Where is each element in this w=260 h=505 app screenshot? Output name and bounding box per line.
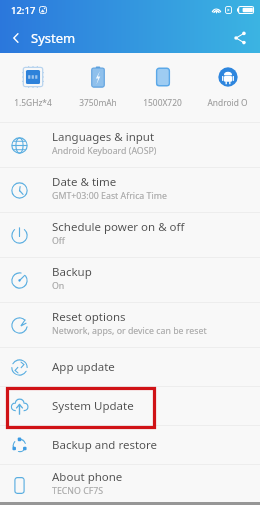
staticText: System Update: [52, 398, 134, 414]
staticText: TECNO CF7S: [52, 485, 104, 497]
button[interactable]: Share: [224, 22, 255, 53]
button[interactable]: Languages & input: [0, 123, 260, 167]
staticText: Android Keyboard (AOSP): [52, 145, 157, 157]
staticText: Off: [52, 235, 65, 247]
staticText: Backup: [52, 264, 92, 280]
button[interactable]: Reset options: [0, 303, 260, 347]
staticText: 1.5GHz*4: [14, 97, 52, 108]
button[interactable]: 3750mAh: [65, 53, 130, 108]
staticText: System: [31, 29, 76, 47]
staticText: Schedule power on & off: [52, 219, 185, 235]
staticText: Android O: [207, 97, 248, 108]
staticText: Date & time: [52, 174, 117, 190]
button[interactable]: Backup: [0, 258, 260, 302]
button[interactable]: System Update: [0, 387, 260, 425]
button[interactable]: Schedule power on & off: [0, 213, 260, 257]
staticText: 3750mAh: [79, 97, 117, 108]
staticText: 12:17: [11, 4, 36, 17]
staticText: 1500X720: [143, 97, 182, 108]
staticText: About phone: [52, 469, 123, 485]
button[interactable]: Android O: [195, 53, 260, 108]
staticText: Network, apps, or device can be reset: [52, 325, 207, 337]
button[interactable]: App update: [0, 348, 260, 386]
staticText: App update: [52, 359, 115, 375]
button[interactable]: 1500X720: [130, 53, 195, 108]
button[interactable]: Date & time: [0, 168, 260, 212]
staticText: On: [52, 280, 65, 292]
staticText: Backup and restore: [52, 437, 158, 453]
button[interactable]: Backup and restore: [0, 426, 260, 464]
button[interactable]: 1.5GHz*4: [0, 53, 65, 108]
staticText: GMT+03:00 East Africa Time: [52, 190, 167, 202]
staticText: Reset options: [52, 309, 126, 325]
button[interactable]: Back: [0, 22, 31, 53]
staticText: Languages & input: [52, 129, 155, 145]
button[interactable]: About phone: [0, 465, 260, 505]
